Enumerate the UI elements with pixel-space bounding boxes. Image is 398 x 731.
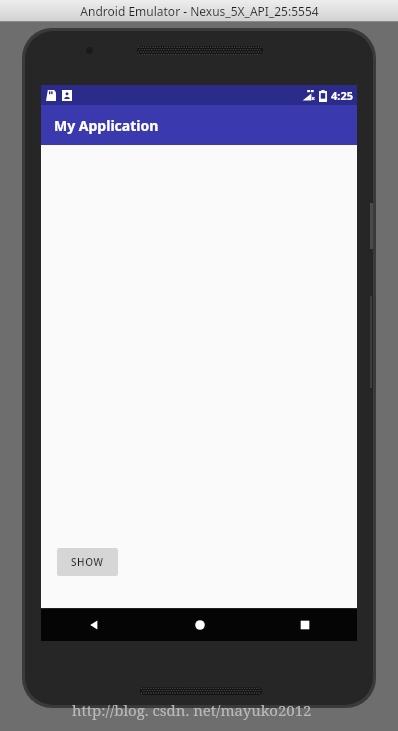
button[interactable]: Recent apps — [252, 608, 357, 641]
staticText: http://blog. csdn. net/mayuko2012 — [72, 700, 312, 720]
button[interactable]: SHOW — [57, 548, 118, 576]
staticText: 4:25 — [331, 88, 353, 103]
staticText: Android Emulator - Nexus_5X_API_25:5554 — [80, 3, 319, 19]
staticText: My Application — [54, 116, 159, 135]
staticText: SHOW — [71, 555, 104, 569]
button[interactable]: Home — [147, 608, 252, 641]
button[interactable]: Back — [41, 608, 147, 641]
